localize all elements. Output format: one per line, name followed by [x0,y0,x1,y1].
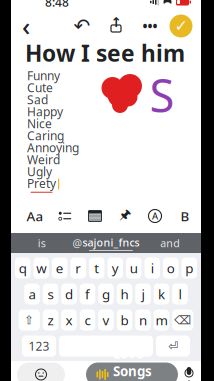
staticText: A [152,210,158,222]
button[interactable]: Drawing [144,205,166,227]
button[interactable]: s [43,283,58,304]
staticText: Caring [27,127,64,143]
staticText: Happy [27,103,63,119]
button[interactable]: @ [72,234,139,252]
button[interactable]: Shift [19,309,40,330]
staticText: is [38,236,46,250]
staticText: Love Songs [113,344,152,380]
staticText: d [65,285,73,303]
button[interactable]: i [144,257,160,278]
button[interactable]: z [43,309,58,330]
staticText: o [167,259,175,277]
button[interactable]: v [98,309,114,330]
staticText: B [180,207,189,225]
button[interactable]: Attach file [114,205,136,227]
button[interactable]: t [89,257,104,278]
button[interactable]: o [163,257,178,278]
staticText: ⇧ [24,313,34,327]
button[interactable]: a [24,283,40,304]
button[interactable]: p [181,257,197,278]
button[interactable]: Return [156,335,190,356]
staticText: ↑ [110,15,121,30]
button[interactable]: l [172,283,188,304]
staticText: x [65,311,72,329]
staticText: i [151,259,154,277]
button[interactable]: Undo [68,12,96,40]
staticText: Sad [27,91,48,107]
staticText: p [185,259,193,277]
staticText: y [112,259,119,277]
staticText: Annoying [27,139,79,155]
button[interactable]: n [135,309,151,330]
button[interactable]: u [126,257,141,278]
button[interactable]: b [117,309,132,330]
staticText: m [155,311,167,329]
button[interactable]: c [80,309,95,330]
staticText: r [75,259,81,277]
staticText: Prety [27,175,56,191]
staticText: ⌫ [174,313,191,327]
button[interactable]: Done [168,13,194,39]
button[interactable]: is [22,234,62,252]
staticText: S [149,65,174,125]
button[interactable]: m [154,309,169,330]
staticText: ⏎ [168,339,178,353]
staticText: v [102,311,109,329]
button[interactable]: f [80,283,95,304]
staticText: ↶ [73,15,90,37]
button[interactable]: r [70,257,86,278]
staticText: c [84,311,90,329]
button[interactable]: Now playing Love Songs by Kaash Paige [86,362,178,381]
staticText: Weird [27,151,60,167]
staticText: 🖈 [119,205,131,227]
button[interactable]: Bold [174,205,196,227]
staticText: t [94,259,99,277]
staticText: a [28,285,35,303]
staticText: ••• [142,17,157,35]
staticText: 8:48 [45,0,69,10]
button[interactable]: e [52,257,67,278]
staticText: ✓ [174,17,187,35]
staticText: g [102,285,110,303]
button[interactable]: g [98,283,114,304]
button[interactable]: k [154,283,169,304]
staticText: How I see him [25,38,185,68]
button[interactable]: Insert table [84,205,106,227]
button[interactable]: Share [102,12,130,40]
staticText: s [47,285,53,303]
button[interactable]: Bulleted list [54,205,76,227]
button[interactable]: y [107,257,123,278]
button[interactable]: q [15,257,30,278]
staticText: n [139,311,147,329]
staticText: Nice [27,115,52,131]
button[interactable]: Voice input [182,364,196,381]
button[interactable]: j [135,283,151,304]
button[interactable]: Backspace [172,309,193,330]
staticText: f [85,285,90,303]
staticText: e [56,259,64,277]
staticText: j [141,285,144,303]
staticText: 123 [28,338,49,354]
staticText: Ugly [27,163,52,179]
staticText: w [36,259,46,277]
staticText: and [160,236,180,250]
staticText: Funny [27,67,60,83]
button[interactable]: Format text [24,205,46,227]
button[interactable]: d [61,283,77,304]
staticText: h [120,285,128,303]
button[interactable]: Back [11,11,41,41]
button[interactable]: x [61,309,77,330]
button[interactable]: w [33,257,49,278]
staticText: ‹ [22,9,30,43]
button[interactable]: More options [136,12,164,40]
button[interactable]: Numbers [22,335,56,356]
staticText: b [120,311,128,329]
button[interactable]: and [150,234,190,252]
button[interactable]: Emoji [17,362,65,381]
button[interactable]: h [117,283,132,304]
staticText: @ [72,236,82,250]
staticText: Cute [27,79,53,95]
staticText: Aa [26,207,43,225]
staticText: l [178,285,181,303]
